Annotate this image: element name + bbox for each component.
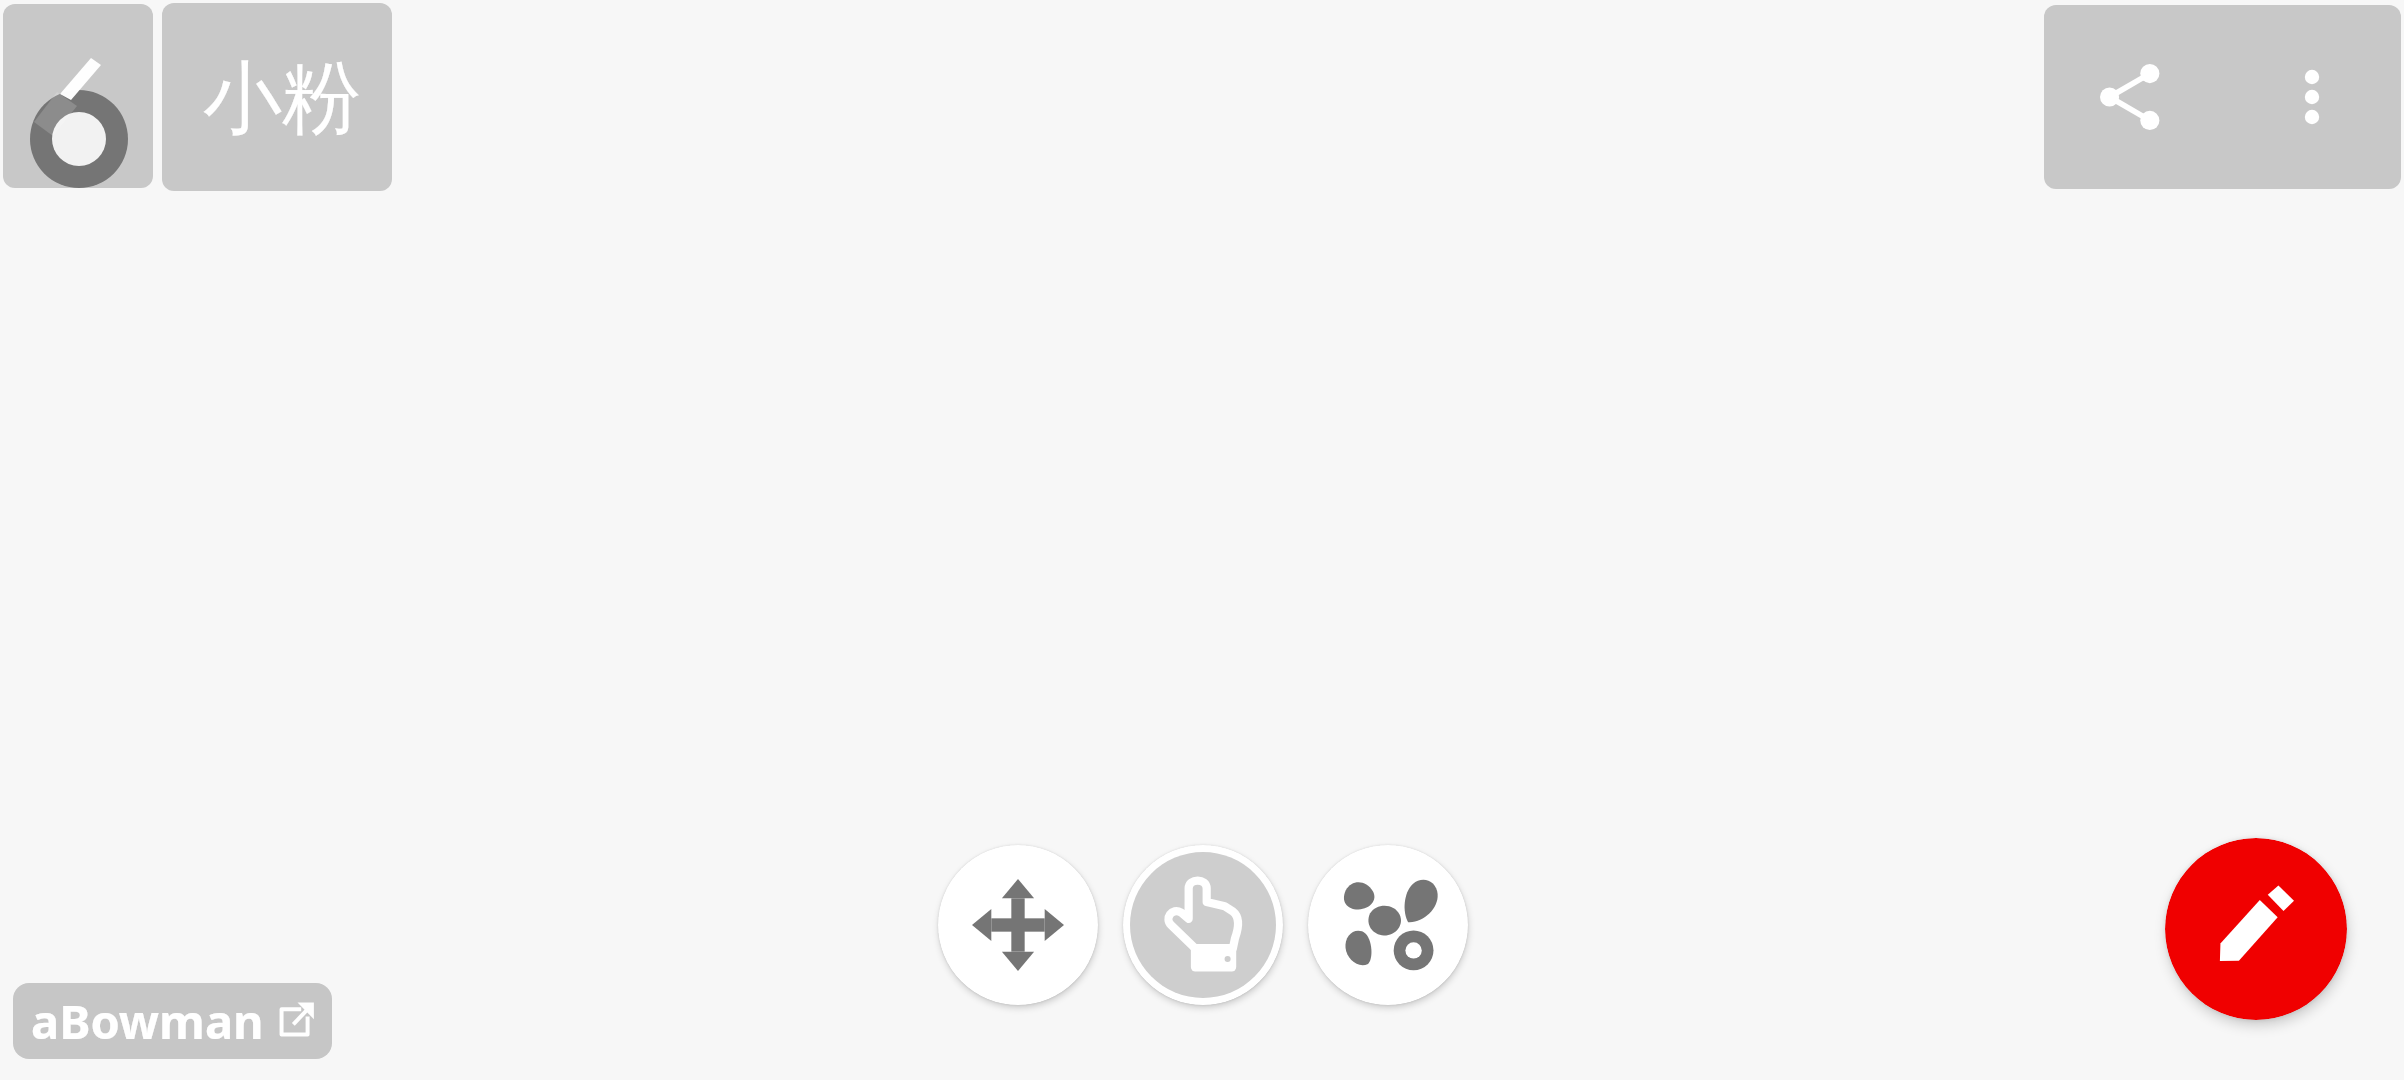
staticText: aBowman (31, 989, 264, 1053)
button[interactable]: Edit (2165, 838, 2347, 1020)
button[interactable]: Share (2059, 5, 2207, 189)
button[interactable]: App logo (3, 4, 153, 188)
button[interactable]: aBowman (13, 983, 332, 1059)
button[interactable]: More options (2252, 5, 2372, 189)
button[interactable]: Move (938, 845, 1098, 1005)
button[interactable]: Sheep (1308, 845, 1468, 1005)
button[interactable]: Touch (1123, 845, 1283, 1005)
button[interactable]: 小粉 (162, 3, 392, 191)
staticText: 小粉 (203, 49, 361, 149)
